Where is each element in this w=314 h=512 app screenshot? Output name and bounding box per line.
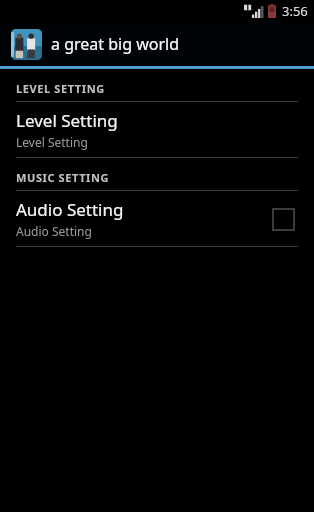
staticText: a great big world	[51, 33, 180, 55]
staticText: Level Setting	[16, 134, 88, 150]
staticText: Audio Setting	[16, 223, 92, 239]
staticText: LEVEL SETTING	[16, 81, 105, 96]
staticText: MUSIC SETTING	[16, 170, 110, 185]
button[interactable]: a great big world	[0, 22, 314, 66]
staticText: Audio Setting	[16, 198, 124, 221]
button[interactable]: Toggle Audio Setting	[268, 204, 298, 234]
button[interactable]: Audio Setting	[0, 191, 314, 246]
staticText: Level Setting	[16, 109, 118, 132]
button[interactable]: Level Setting	[0, 102, 314, 157]
staticText: 3:56	[282, 2, 308, 20]
